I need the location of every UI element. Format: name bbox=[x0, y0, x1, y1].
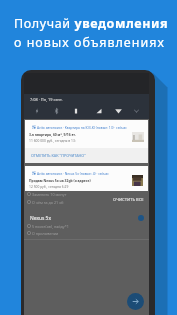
button[interactable]: ОЧИСТИТЬ ВСЕ bbox=[113, 196, 145, 204]
button[interactable]: Wi-Fi bbox=[115, 108, 122, 114]
staticText: О приложении bbox=[32, 231, 59, 236]
staticText: 11 600 000 руб., сегодня в 13: bbox=[29, 138, 76, 142]
staticText: Avito автопоиск · Nexus 5x (новые: 4) · … bbox=[37, 171, 109, 175]
button[interactable]: ОТМЕТИТЬ КАК "ПРОЧИТАНО" bbox=[25, 148, 148, 163]
button[interactable]: Bluetooth bbox=[54, 108, 59, 114]
staticText: 7:08 · Пн, 19 сент. bbox=[30, 97, 63, 102]
staticText: о новых объявлениях bbox=[14, 34, 165, 51]
button[interactable]: Avito автопоиск · Квартира на ЮЗ-Ю (новы… bbox=[25, 120, 148, 162]
button[interactable]: О приложении bbox=[27, 230, 107, 236]
staticText: Nexus 5x bbox=[30, 215, 51, 222]
staticText: Заменить 10 минут bbox=[32, 192, 67, 197]
staticText: 12 500 руб., сегодня 6:29 bbox=[29, 184, 69, 188]
staticText: Продам Nexus 5x на 32gb (о адресе) bbox=[29, 178, 91, 183]
button[interactable]: Toggle notifications bbox=[138, 215, 144, 221]
button[interactable]: Flashlight bbox=[35, 108, 39, 114]
staticText: О чём за до 21 об bbox=[32, 200, 64, 205]
staticText: ОТМЕТИТЬ КАК "ПРОЧИТАНО" bbox=[31, 153, 86, 158]
staticText: 3-к квартира, 60 м², 9/16 эт. bbox=[29, 132, 76, 137]
button[interactable]: Signal bbox=[96, 108, 102, 114]
staticText: Получай уведомления bbox=[14, 15, 169, 32]
button[interactable]: Expand bbox=[134, 109, 139, 113]
staticText: ОЧИСТИТЬ ВСЕ bbox=[113, 197, 144, 203]
staticText: 5 поиск(ов), найду*1 bbox=[32, 224, 69, 229]
button[interactable]: Compose bbox=[127, 293, 144, 310]
button[interactable]: Battery bbox=[74, 108, 78, 114]
button[interactable]: Заменить 10 минут bbox=[27, 191, 107, 197]
button[interactable]: 5 поиск(ов), найду*1 bbox=[27, 223, 107, 229]
button[interactable]: Avito автопоиск · Nexus 5x (новые: 4) · … bbox=[25, 166, 148, 191]
button[interactable]: О чём за до 21 об bbox=[27, 199, 107, 205]
staticText: Avito автопоиск · Квартира на ЮЗ-Ю (новы… bbox=[37, 125, 127, 129]
